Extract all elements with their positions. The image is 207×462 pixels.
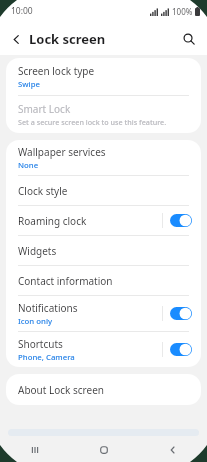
button[interactable]: Home (69, 438, 138, 462)
button[interactable]: Clock style (6, 176, 201, 205)
staticText: 10:00 (11, 5, 33, 17)
staticText: Set a secure screen lock to use this fea… (18, 117, 167, 127)
staticText: None (18, 160, 39, 171)
staticText: Icon only (18, 316, 53, 327)
button[interactable]: Back (138, 438, 207, 462)
staticText: Roaming clock (18, 214, 87, 228)
button[interactable]: Toggle on (170, 307, 192, 320)
button[interactable]: Recent apps (0, 438, 69, 462)
button[interactable]: Toggle on (170, 343, 192, 356)
staticText: Widgets (18, 244, 57, 258)
staticText: Swipe (18, 79, 40, 90)
staticText: 100% (172, 6, 193, 17)
staticText: Lock screen (29, 30, 106, 48)
button[interactable]: About Lock screen (6, 374, 201, 405)
staticText: Screen lock type (18, 64, 95, 78)
button[interactable]: Screen lock type (6, 58, 201, 95)
button[interactable]: Smart Lock (6, 96, 201, 133)
button[interactable]: Wallpaper services (6, 140, 201, 175)
staticText: Phone, Camera (18, 352, 75, 363)
staticText: Contact information (18, 274, 113, 288)
staticText: Wallpaper services (18, 145, 106, 159)
button[interactable]: Roaming clock (6, 206, 201, 235)
button[interactable]: Contact information (6, 266, 201, 295)
button[interactable]: Widgets (6, 236, 201, 265)
staticText: Notifications (18, 301, 78, 315)
button[interactable]: Toggle on (170, 214, 192, 227)
button[interactable]: Shortcuts (6, 332, 201, 367)
staticText: Clock style (18, 184, 68, 198)
staticText: Shortcuts (18, 337, 63, 351)
button[interactable]: Search (177, 27, 201, 51)
button[interactable]: Back (4, 27, 28, 51)
button[interactable]: Notifications (6, 296, 201, 331)
staticText: Smart Lock (18, 102, 71, 116)
staticText: About Lock screen (18, 383, 104, 397)
